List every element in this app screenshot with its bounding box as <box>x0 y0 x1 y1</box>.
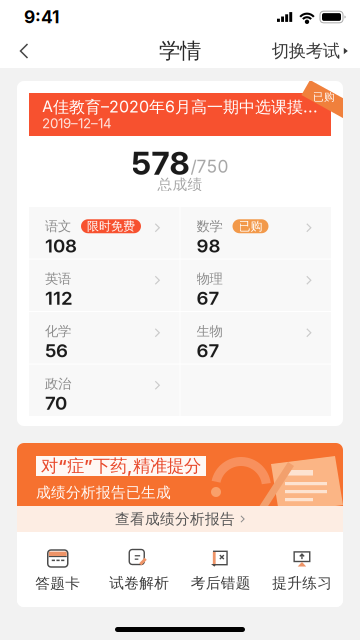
staticText: 70 <box>45 392 67 414</box>
staticText: 学情 <box>159 38 201 64</box>
button[interactable]: 英语 <box>29 259 179 311</box>
staticText: 政治 <box>45 375 71 392</box>
button[interactable]: 考后错题 <box>180 532 261 607</box>
button[interactable]: 查看成绩分析报告 <box>17 506 343 532</box>
staticText: 数学 <box>196 218 222 235</box>
staticText: 成绩分析报告已生成 <box>36 483 171 502</box>
staticText: 英语 <box>45 270 71 287</box>
staticText: 语文 <box>45 218 71 235</box>
staticText: 9:41 <box>24 6 59 27</box>
button[interactable]: 切换考试 <box>260 34 360 68</box>
staticText: 已购 <box>238 219 262 234</box>
staticText: 试卷解析 <box>109 574 169 592</box>
staticText: A佳教育–2020年6月高一期中选课摸底... <box>42 97 318 117</box>
staticText: 对“症”下药,精准提分 <box>41 455 201 477</box>
staticText: 112 <box>45 287 73 309</box>
staticText: 67 <box>196 339 219 362</box>
button[interactable]: 生物 <box>180 312 331 363</box>
staticText: 已购 <box>313 90 335 104</box>
staticText: 2019–12–14 <box>42 115 112 131</box>
staticText: 98 <box>196 234 220 257</box>
staticText: 限时免费 <box>87 219 135 234</box>
staticText: 查看成绩分析报告 <box>115 510 235 528</box>
staticText: 提升练习 <box>272 574 332 592</box>
button[interactable]: 政治 <box>29 364 179 416</box>
staticText: 答题卡 <box>35 574 80 593</box>
staticText: 108 <box>45 234 77 257</box>
staticText: 切换考试 <box>272 40 340 62</box>
staticText: 物理 <box>196 270 222 287</box>
staticText: 生物 <box>196 323 222 340</box>
button[interactable]: 返回 <box>0 34 46 68</box>
button[interactable]: 物理 <box>180 259 331 311</box>
button[interactable]: 提升练习 <box>261 532 343 607</box>
staticText: 578 <box>131 144 189 182</box>
staticText: 总成绩 <box>157 175 202 194</box>
button[interactable]: 答题卡 <box>17 532 98 607</box>
button[interactable]: 数学 <box>180 207 331 258</box>
staticText: 67 <box>196 287 219 309</box>
button[interactable]: 语文 <box>29 207 179 258</box>
staticText: /750 <box>190 156 228 177</box>
button[interactable]: 试卷解析 <box>98 532 180 607</box>
staticText: 考后错题 <box>191 574 251 592</box>
staticText: 56 <box>45 339 68 362</box>
staticText: 化学 <box>45 323 71 340</box>
button[interactable]: 化学 <box>29 312 179 363</box>
